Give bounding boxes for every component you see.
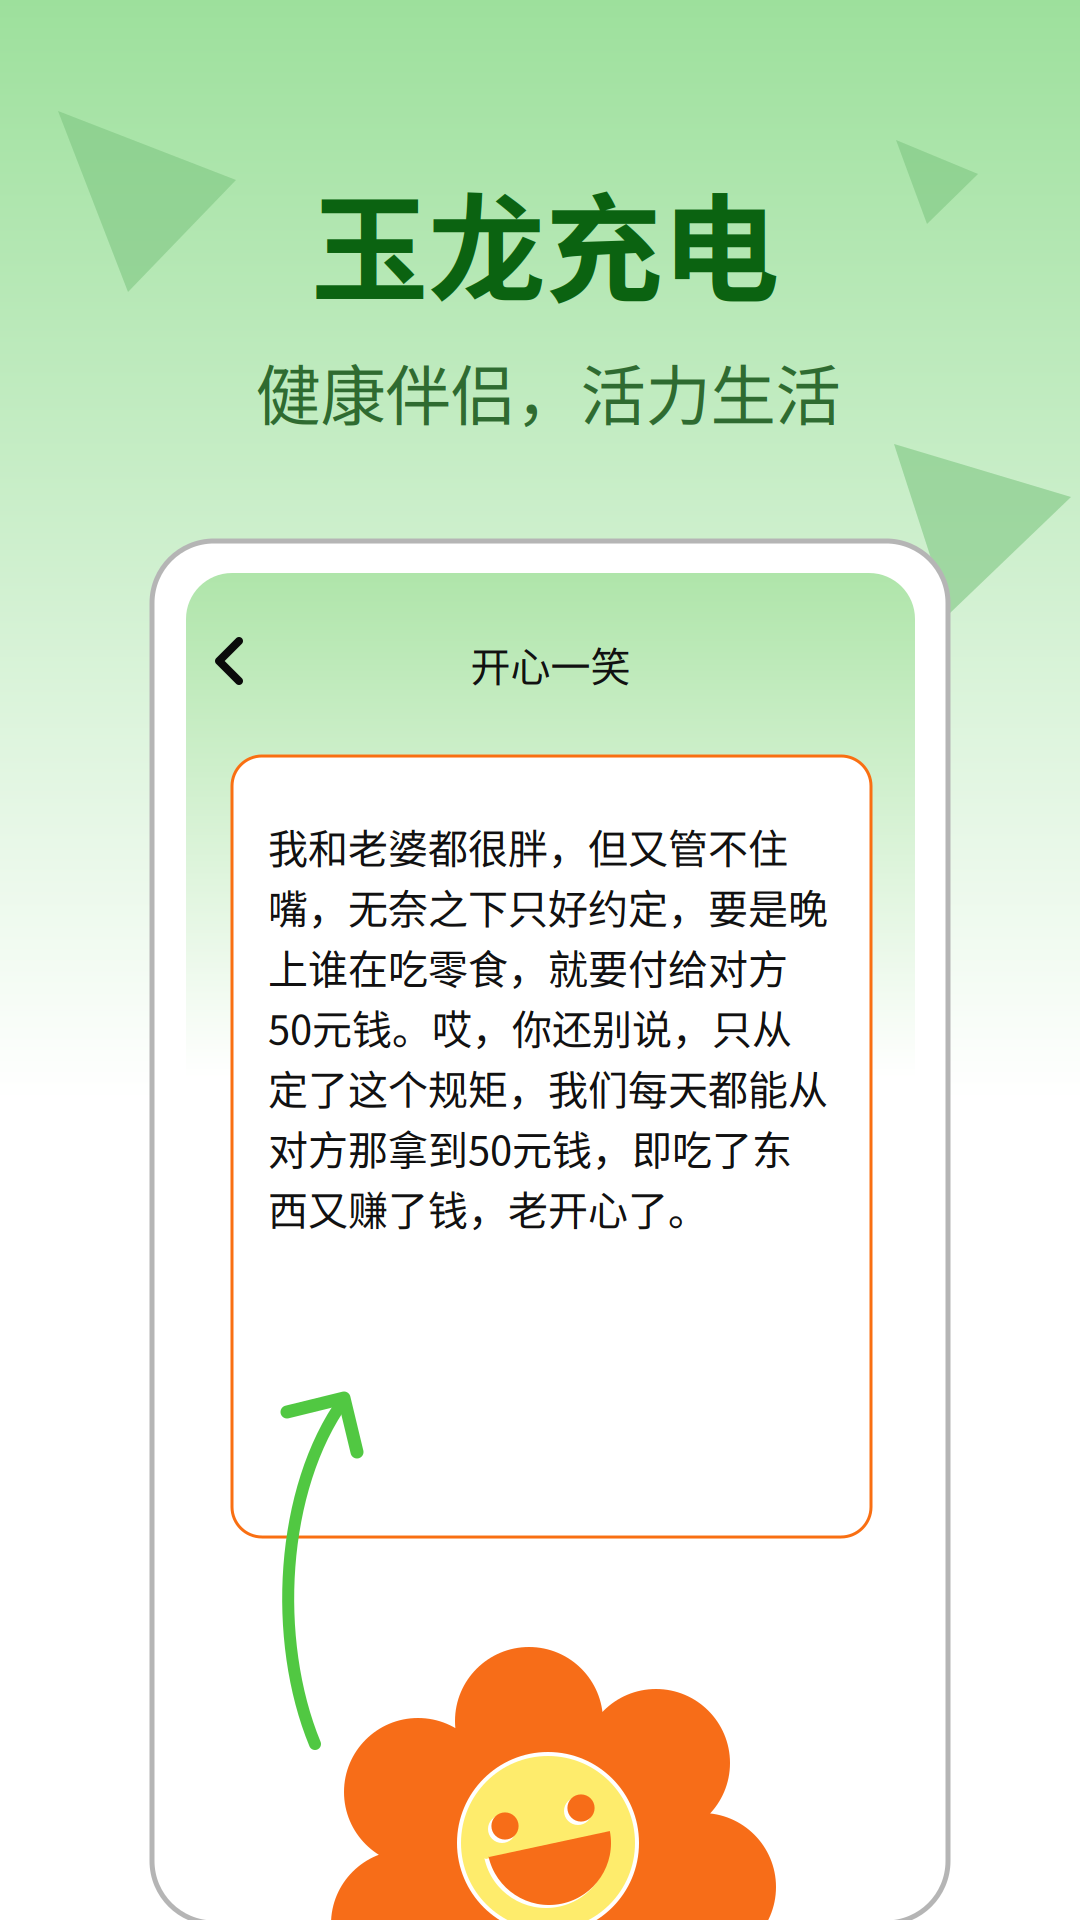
staticText: 开心一笑 — [470, 635, 630, 693]
staticText: 我和老婆都很胖，但又管不住 嘴，无奈之下只好约定，要是晚 上谁在吃零食，就要付给… — [268, 817, 828, 1237]
staticText: 健康伴侣，活力生活 — [255, 344, 840, 438]
staticText: 玉龙充电 — [311, 156, 779, 326]
button[interactable]: Back — [176, 618, 262, 704]
